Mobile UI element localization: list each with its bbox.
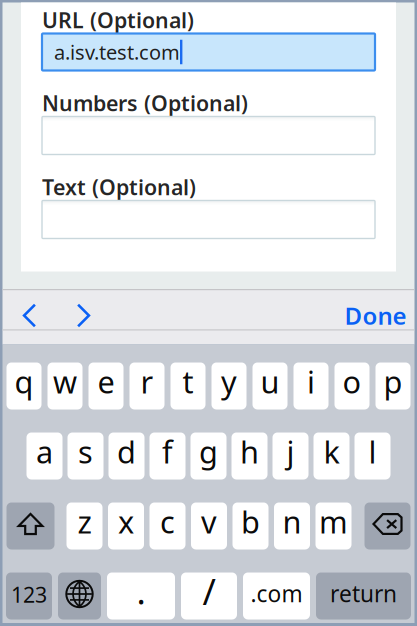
staticText: a.isv.test.com (54, 39, 180, 65)
button[interactable]: w (47, 362, 82, 409)
staticText: l (368, 431, 376, 472)
staticText: p (383, 361, 402, 402)
button[interactable]: h (231, 432, 267, 479)
button[interactable]: q (6, 362, 41, 409)
button[interactable]: f (149, 432, 185, 479)
button[interactable]: / (181, 572, 237, 619)
button[interactable]: Done (344, 302, 414, 328)
staticText: k (323, 431, 339, 472)
staticText: .com (250, 578, 302, 608)
button[interactable]: Shift (6, 502, 54, 549)
button[interactable]: j (272, 432, 308, 479)
staticText: t (182, 361, 193, 402)
button[interactable]: a.isv.test.com (42, 33, 375, 70)
button[interactable]: u (252, 362, 287, 409)
staticText: u (260, 361, 279, 402)
staticText: URL (Optional) (42, 6, 194, 34)
staticText: o (342, 361, 361, 402)
button[interactable]: p (375, 362, 410, 409)
button[interactable]: r (129, 362, 164, 409)
staticText: q (14, 361, 33, 402)
staticText: Text (Optional) (42, 173, 196, 201)
staticText: i (307, 361, 315, 402)
button[interactable]: y (211, 362, 246, 409)
staticText: m (319, 501, 348, 542)
staticText: s (78, 431, 93, 472)
button[interactable]: b (232, 502, 268, 549)
staticText: y (221, 361, 237, 402)
button[interactable]: t (170, 362, 205, 409)
button[interactable]: k (313, 432, 349, 479)
staticText: v (201, 501, 217, 542)
button[interactable]: c (149, 502, 185, 549)
staticText: x (118, 501, 134, 542)
staticText: w (53, 361, 77, 402)
button[interactable]: Delete (364, 502, 410, 549)
button[interactable]: . (107, 572, 175, 619)
button[interactable]: Text (Optional) (42, 200, 375, 238)
staticText: d (117, 431, 136, 472)
button[interactable]: i (293, 362, 328, 409)
staticText: n (282, 501, 301, 542)
button[interactable]: a (26, 432, 62, 479)
button[interactable]: o (334, 362, 369, 409)
button[interactable]: m (315, 502, 351, 549)
staticText: r (140, 361, 153, 402)
button[interactable]: x (108, 502, 144, 549)
button[interactable]: Next field (56, 302, 110, 328)
button[interactable]: .com (243, 572, 310, 619)
staticText: Numbers (Optional) (42, 89, 248, 117)
button[interactable]: Next keyboard (58, 572, 101, 619)
staticText: Done (344, 300, 406, 331)
staticText: a (36, 431, 53, 472)
staticText: j (286, 431, 294, 472)
button[interactable]: Numbers (Optional) (42, 116, 375, 154)
button[interactable]: d (108, 432, 144, 479)
staticText: . (136, 568, 145, 614)
staticText: / (202, 567, 215, 615)
staticText: c (160, 501, 175, 542)
button[interactable]: Previous field (2, 302, 56, 328)
button[interactable]: s (67, 432, 103, 479)
staticText: return (330, 578, 397, 608)
button[interactable]: v (191, 502, 227, 549)
staticText: b (241, 501, 260, 542)
button[interactable]: z (66, 502, 102, 549)
button[interactable]: l (354, 432, 390, 479)
button[interactable]: 123 (6, 572, 52, 619)
staticText: f (162, 431, 173, 472)
staticText: h (240, 431, 259, 472)
staticText: e (97, 361, 114, 402)
button[interactable]: g (190, 432, 226, 479)
staticText: g (199, 431, 218, 472)
button[interactable]: e (88, 362, 123, 409)
button[interactable]: n (274, 502, 310, 549)
staticText: 123 (11, 580, 47, 609)
button[interactable]: return (316, 572, 411, 619)
staticText: z (77, 501, 91, 542)
